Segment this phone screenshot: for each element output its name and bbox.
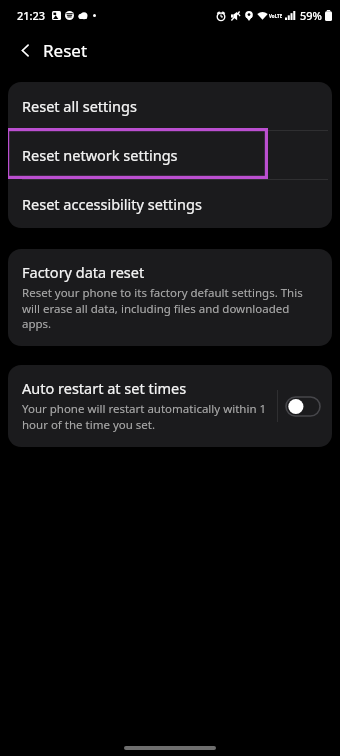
button[interactable]: Auto restart at set times: [8, 365, 277, 447]
staticText: 21:23: [17, 8, 46, 23]
button[interactable]: Factory data reset: [8, 249, 332, 346]
button[interactable]: Reset network settings: [8, 131, 332, 179]
staticText: Reset your phone to its factory default …: [22, 285, 316, 331]
staticText: Reset network settings: [22, 145, 178, 165]
staticText: Auto restart at set times: [22, 378, 187, 398]
staticText: 59%: [300, 8, 322, 23]
staticText: Factory data reset: [22, 262, 145, 282]
button[interactable]: Back: [10, 35, 40, 65]
button[interactable]: Reset all settings: [8, 82, 332, 130]
button[interactable]: Reset accessibility settings: [8, 180, 332, 228]
staticText: VoLTE: [269, 13, 283, 19]
staticText: Reset: [43, 39, 88, 62]
staticText: Reset all settings: [22, 96, 137, 116]
button[interactable]: Auto restart at set times, off: [286, 389, 322, 423]
staticText: Your phone will restart automatically wi…: [22, 401, 271, 432]
staticText: Reset accessibility settings: [22, 194, 202, 214]
